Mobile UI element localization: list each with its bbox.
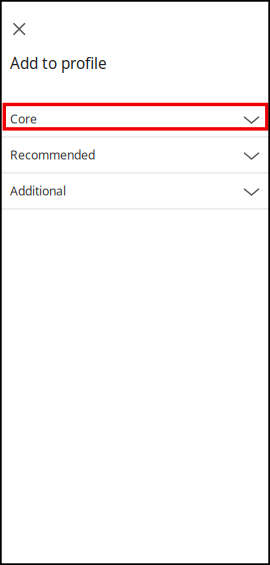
staticText: Recommended (10, 147, 95, 163)
button[interactable]: Additional (0, 174, 270, 210)
staticText: Add to profile (10, 52, 107, 73)
button[interactable]: Close (0, 0, 35, 44)
button[interactable]: Core (0, 102, 270, 138)
staticText: Additional (10, 183, 66, 199)
button[interactable]: Recommended (0, 138, 270, 174)
staticText: Core (10, 111, 37, 127)
